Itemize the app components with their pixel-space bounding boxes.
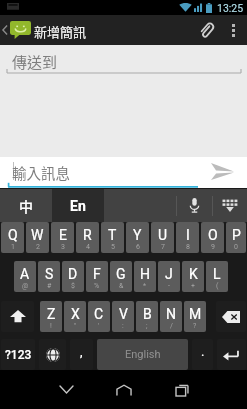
staticText: Y [133,227,142,243]
button[interactable]: Enter [217,339,246,370]
button[interactable]: A [14,261,36,292]
staticText: L [213,266,221,282]
button[interactable]: J [158,261,180,292]
button[interactable]: Space [97,339,188,370]
staticText: R [83,227,92,243]
staticText: - [168,282,170,290]
staticText: & [119,282,124,290]
staticText: X [71,306,80,322]
staticText: , [80,344,83,359]
staticText: 0 [234,243,238,251]
button[interactable]: E [51,222,74,253]
button[interactable]: K [182,261,204,292]
staticText: 2 [36,243,40,251]
button[interactable]: Q [1,222,24,253]
staticText: + [191,282,195,290]
button[interactable]: Shift [1,301,34,332]
staticText: K [189,266,198,282]
staticText: 中 [19,196,33,216]
staticText: ; [146,322,148,330]
button[interactable]: En [52,189,104,222]
staticText: C [94,306,104,322]
button[interactable]: Back [37,370,95,409]
button[interactable]: P [226,222,246,253]
button[interactable]: Y [126,222,149,253]
staticText: / [170,322,173,330]
button[interactable]: C [88,301,110,332]
button[interactable]: Send [198,157,247,186]
button[interactable]: O [201,222,224,253]
staticText: P [232,227,241,243]
staticText: G [116,266,126,282]
button[interactable]: 傳送到 [0,45,247,75]
staticText: # [47,282,52,290]
button[interactable]: Voice input [177,189,212,222]
staticText: E [59,227,67,243]
staticText: 1 [11,243,15,251]
button[interactable]: F [86,261,108,292]
staticText: * [143,282,147,290]
staticText: 4 [86,243,90,251]
button[interactable]: Symbols [1,339,35,370]
button[interactable]: Comma [70,339,93,370]
button[interactable]: D [62,261,84,292]
button[interactable]: Navigate up [0,15,31,45]
staticText: Z [47,306,56,322]
button[interactable]: X [64,301,86,332]
staticText: U [158,227,168,243]
button[interactable]: N [160,301,182,332]
staticText: B [143,306,152,322]
staticText: O [208,227,218,243]
button[interactable]: 中 [0,189,52,222]
staticText: D [68,266,78,282]
staticText: " [74,322,77,330]
staticText: @ [22,282,29,290]
button[interactable]: V [112,301,134,332]
button[interactable]: Home [95,370,153,409]
button[interactable]: Attach [190,15,222,45]
button[interactable]: W [26,222,49,253]
staticText: Q [8,227,18,243]
button[interactable]: G [110,261,132,292]
button[interactable]: H [134,261,156,292]
staticText: F [93,266,101,282]
button[interactable]: Recent apps [153,370,211,409]
staticText: 5 [111,243,115,251]
staticText: : [122,322,124,330]
staticText: En [70,198,86,214]
staticText: W [31,227,44,243]
staticText: % [94,282,100,290]
button[interactable]: M [184,301,206,332]
button[interactable]: Hide keyboard [213,189,247,222]
button[interactable]: L [206,261,228,292]
staticText: 6 [136,243,140,251]
button[interactable]: Period [192,339,213,370]
staticText: N [166,306,176,322]
staticText: $ [71,282,75,290]
staticText: J [165,266,173,282]
staticText: 8 [186,243,190,251]
staticText: ' [98,322,100,330]
staticText: . [201,344,205,359]
button[interactable]: B [136,301,158,332]
button[interactable]: S [38,261,60,292]
button[interactable]: R [76,222,99,253]
staticText: 9 [211,243,215,251]
button[interactable]: U [151,222,174,253]
staticText: S [45,266,54,282]
staticText: V [119,306,128,322]
button[interactable]: 輸入訊息 [0,157,198,186]
button[interactable]: I [176,222,199,253]
button[interactable]: Backspace [216,301,246,332]
button[interactable]: T [101,222,124,253]
staticText: ?123 [5,348,32,362]
staticText: ! [50,322,52,330]
button[interactable]: More options [222,15,244,45]
staticText: ? [193,322,197,330]
staticText: H [140,266,150,282]
button[interactable]: Z [40,301,62,332]
staticText: 輸入訊息 [12,162,70,183]
staticText: 7 [161,243,165,251]
button[interactable]: Change language [39,339,66,370]
staticText: 3 [61,243,65,251]
